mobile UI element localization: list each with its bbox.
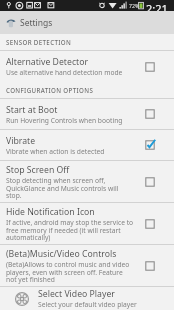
button[interactable]: (Beta)Music/Video Controls xyxy=(0,245,174,286)
button[interactable]: Alternative Detector xyxy=(0,51,174,82)
staticText: CONFIGURATION OPTIONS xyxy=(6,86,94,94)
staticText: Hide Notification Icon xyxy=(6,206,95,218)
button[interactable]: Stop Screen Off xyxy=(0,161,174,202)
staticText: Select Video Player xyxy=(38,288,115,300)
staticText: Run Hovering Controls when booting xyxy=(6,116,123,125)
staticText: 2:21 xyxy=(146,1,168,12)
button[interactable]: Select Video Player xyxy=(0,287,174,310)
staticText: (Beta)Music/Video Controls xyxy=(6,248,117,260)
staticText: Alternative Detector xyxy=(6,56,89,68)
staticText: Start at Boot xyxy=(6,104,58,116)
staticText: (Beta)Allows to control music and video … xyxy=(6,260,134,284)
button[interactable]: Hide Notification Icon xyxy=(0,203,174,244)
staticText: Stop detecting when screen off, QuickGla… xyxy=(6,176,134,200)
staticText: 72% xyxy=(129,2,140,9)
button[interactable]: Vibrate xyxy=(0,130,174,160)
staticText: Settings xyxy=(20,17,53,29)
staticText: Stop Screen Off xyxy=(6,164,70,176)
staticText: Select your default video player xyxy=(38,300,137,309)
button[interactable]: Start at Boot xyxy=(0,99,174,129)
staticText: If active, android may stop the service … xyxy=(6,218,134,242)
staticText: Vibrate when action is detected xyxy=(6,147,105,156)
staticText: SENSOR DETECTION xyxy=(6,38,72,46)
button[interactable]: Settings xyxy=(0,11,174,34)
staticText: Vibrate xyxy=(6,135,36,147)
staticText: Use alternative hand detection mode xyxy=(6,68,123,77)
